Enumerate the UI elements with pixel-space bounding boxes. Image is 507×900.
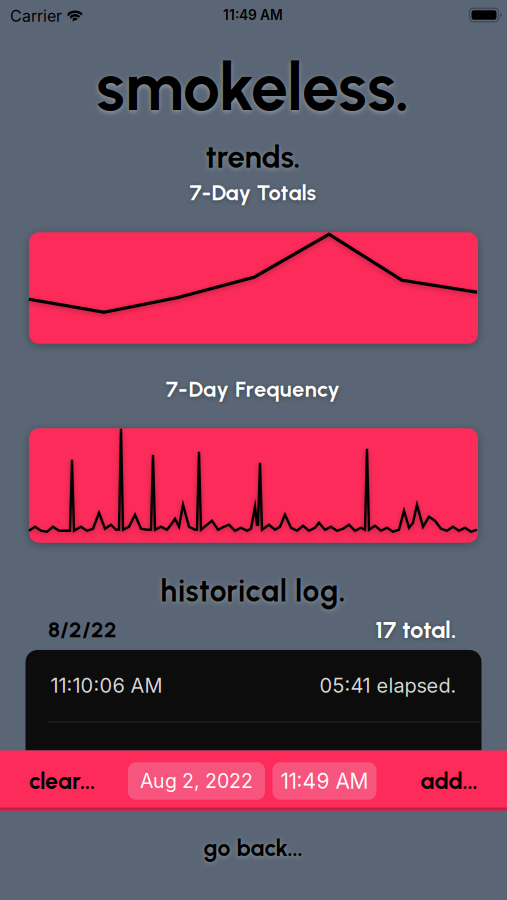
staticText: clear... — [29, 767, 95, 795]
staticText: 11:49 AM — [223, 7, 283, 23]
button[interactable]: go back... — [203, 834, 302, 862]
button[interactable]: add... — [420, 767, 477, 795]
staticText: Aug 2, 2022 — [140, 769, 253, 793]
staticText: 11:10:06 AM — [50, 673, 162, 698]
staticText: Carrier — [10, 6, 62, 26]
staticText: historical log. — [160, 573, 346, 609]
staticText: add... — [420, 767, 477, 795]
button[interactable]: 11:49 AM — [272, 762, 376, 800]
staticText: 8/2/22 — [48, 616, 117, 643]
button[interactable]: clear... — [29, 767, 95, 795]
staticText: 7-Day Totals — [189, 179, 316, 206]
staticText: 11:49 AM — [280, 768, 368, 794]
staticText: 7-Day Frequency — [166, 376, 340, 402]
staticText: 17 total. — [375, 615, 456, 644]
button[interactable]: Aug 2, 2022 — [128, 762, 265, 800]
staticText: go back... — [203, 834, 302, 862]
staticText: trends. — [205, 138, 300, 176]
staticText: 05:41 elapsed. — [319, 673, 456, 698]
staticText: smokeless. — [96, 47, 410, 127]
